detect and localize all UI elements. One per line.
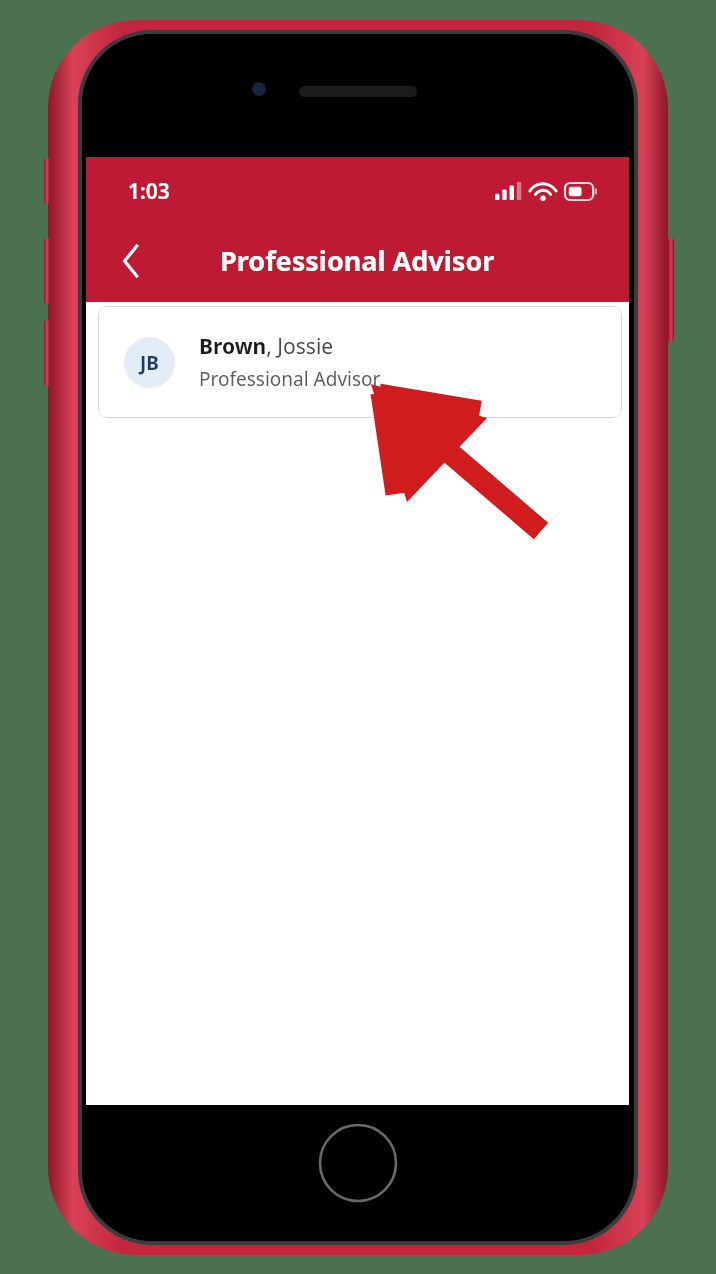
staticText: 1:03 xyxy=(128,177,170,206)
button[interactable]: JB xyxy=(98,306,622,418)
button[interactable]: Back xyxy=(108,238,154,284)
staticText: JB xyxy=(140,350,159,376)
staticText: Professional Advisor xyxy=(199,366,381,392)
staticText: Professional Advisor xyxy=(220,242,495,279)
staticText: Brown, Jossie xyxy=(199,332,334,361)
other: Home xyxy=(318,1123,398,1203)
